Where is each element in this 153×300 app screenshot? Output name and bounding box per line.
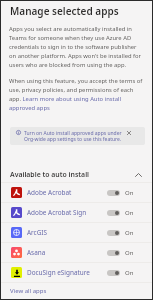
button[interactable]: DocuSign eSignature [1, 263, 152, 282]
button[interactable]: Toggle on [107, 250, 120, 256]
button[interactable]: View all apps [10, 287, 47, 295]
button[interactable]: Available to auto install [1, 167, 152, 182]
button[interactable]: Turn on Auto install approved apps under… [10, 127, 145, 145]
staticText: On [125, 209, 134, 217]
button[interactable]: Toggle on [107, 210, 120, 216]
staticText: Apps you select are automatically instal… [9, 24, 145, 69]
button[interactable]: Toggle on [107, 270, 120, 276]
staticText: Manage selected apps [10, 4, 119, 18]
button[interactable]: Asana [1, 243, 152, 262]
button[interactable]: Toggle on [107, 230, 120, 236]
button[interactable]: ArcGIS [1, 223, 152, 242]
staticText: DocuSign eSignature [27, 268, 90, 277]
button[interactable]: Adobe Acrobat Sign [1, 203, 152, 222]
staticText: On [125, 269, 134, 277]
button[interactable]: Toggle on [107, 190, 120, 196]
staticText: When using this feature, you accept the … [9, 76, 145, 112]
staticText: On [125, 249, 134, 257]
staticText: Adobe Acrobat [27, 188, 72, 197]
other: Collapse section [135, 173, 142, 177]
staticText: Asana [27, 248, 46, 257]
staticText: On [125, 189, 134, 197]
button[interactable]: Adobe Acrobat [1, 183, 152, 202]
staticText: ArcGIS [27, 228, 47, 237]
staticText: Available to auto install [10, 170, 90, 179]
staticText: Adobe Acrobat Sign [27, 208, 87, 217]
button[interactable]: Dismiss [124, 128, 133, 137]
staticText: On [125, 229, 134, 237]
staticText: Turn on Auto install approved apps under… [24, 130, 123, 142]
